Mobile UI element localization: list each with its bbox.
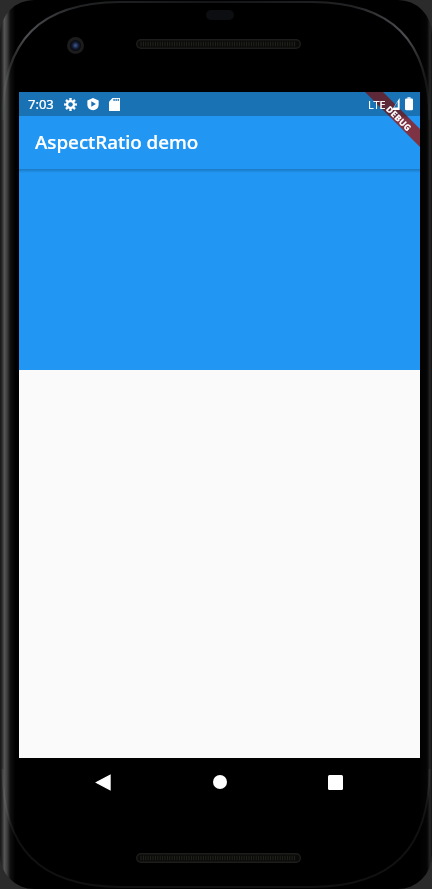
- button[interactable]: Recent apps: [311, 758, 359, 806]
- staticText: AspectRatio demo: [35, 129, 199, 155]
- button[interactable]: Home: [196, 758, 244, 806]
- staticText: DEBUG: [383, 103, 414, 134]
- staticText: LTE: [368, 97, 386, 112]
- staticText: 7:03: [28, 95, 54, 113]
- button[interactable]: AspectRatio demo: [19, 116, 420, 169]
- button[interactable]: Back: [79, 758, 127, 806]
